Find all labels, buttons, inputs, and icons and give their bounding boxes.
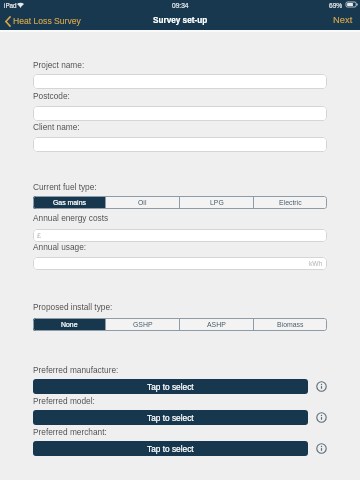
staticText: Postcode: [33, 91, 70, 100]
staticText: kWh [309, 260, 323, 267]
button[interactable]: £ [33, 229, 327, 242]
staticText: Gas mains [53, 199, 86, 207]
staticText: Client name: [33, 122, 80, 131]
staticText: None [61, 321, 78, 329]
staticText: Preferred model: [33, 396, 95, 405]
button[interactable] [33, 137, 327, 152]
button[interactable] [33, 106, 327, 121]
staticText: GSHP [133, 321, 153, 329]
staticText: LPG [210, 199, 224, 207]
button[interactable]: LPG [180, 196, 253, 209]
button[interactable]: ASHP [180, 318, 253, 331]
button[interactable]: More information [316, 412, 327, 423]
button[interactable]: Biomass [254, 318, 327, 331]
button[interactable]: Tap to select [33, 379, 308, 394]
button[interactable]: More information [316, 381, 327, 392]
button[interactable]: Next [331, 11, 355, 27]
staticText: Annual energy costs [33, 213, 109, 222]
staticText: Next [333, 14, 353, 25]
staticText: Survey set-up [153, 16, 208, 25]
button[interactable]: GSHP [106, 318, 179, 331]
button[interactable]: Tap to select [33, 410, 308, 425]
button[interactable]: Gas mains [33, 196, 105, 209]
button[interactable]: None [33, 318, 105, 331]
button[interactable]: Tap to select [33, 441, 308, 456]
staticText: Biomass [277, 321, 304, 329]
staticText: Current fuel type: [33, 182, 97, 191]
staticText: £ [37, 232, 41, 240]
button[interactable]: Oil [106, 196, 179, 209]
staticText: Preferred merchant: [33, 427, 107, 436]
staticText: Proposed install type: [33, 302, 113, 311]
staticText: Electric [279, 199, 302, 207]
button[interactable] [33, 74, 327, 89]
staticText: 69% [329, 2, 343, 9]
staticText: Tap to select [147, 413, 194, 422]
staticText: Heat Loss Survey [13, 16, 81, 26]
button[interactable]: kWh [33, 257, 327, 270]
staticText: Project name: [33, 60, 85, 69]
staticText: Tap to select [147, 444, 194, 453]
button[interactable]: Electric [254, 196, 327, 209]
button[interactable]: More information [316, 443, 327, 454]
staticText: Annual usage: [33, 242, 87, 251]
staticText: ASHP [207, 321, 226, 329]
button[interactable]: Heat Loss Survey [5, 13, 81, 29]
staticText: Oil [138, 199, 147, 207]
staticText: 09:34 [172, 2, 189, 9]
staticText: Preferred manufacture: [33, 365, 119, 374]
staticText: Tap to select [147, 382, 194, 391]
staticText: iPad [4, 2, 17, 9]
